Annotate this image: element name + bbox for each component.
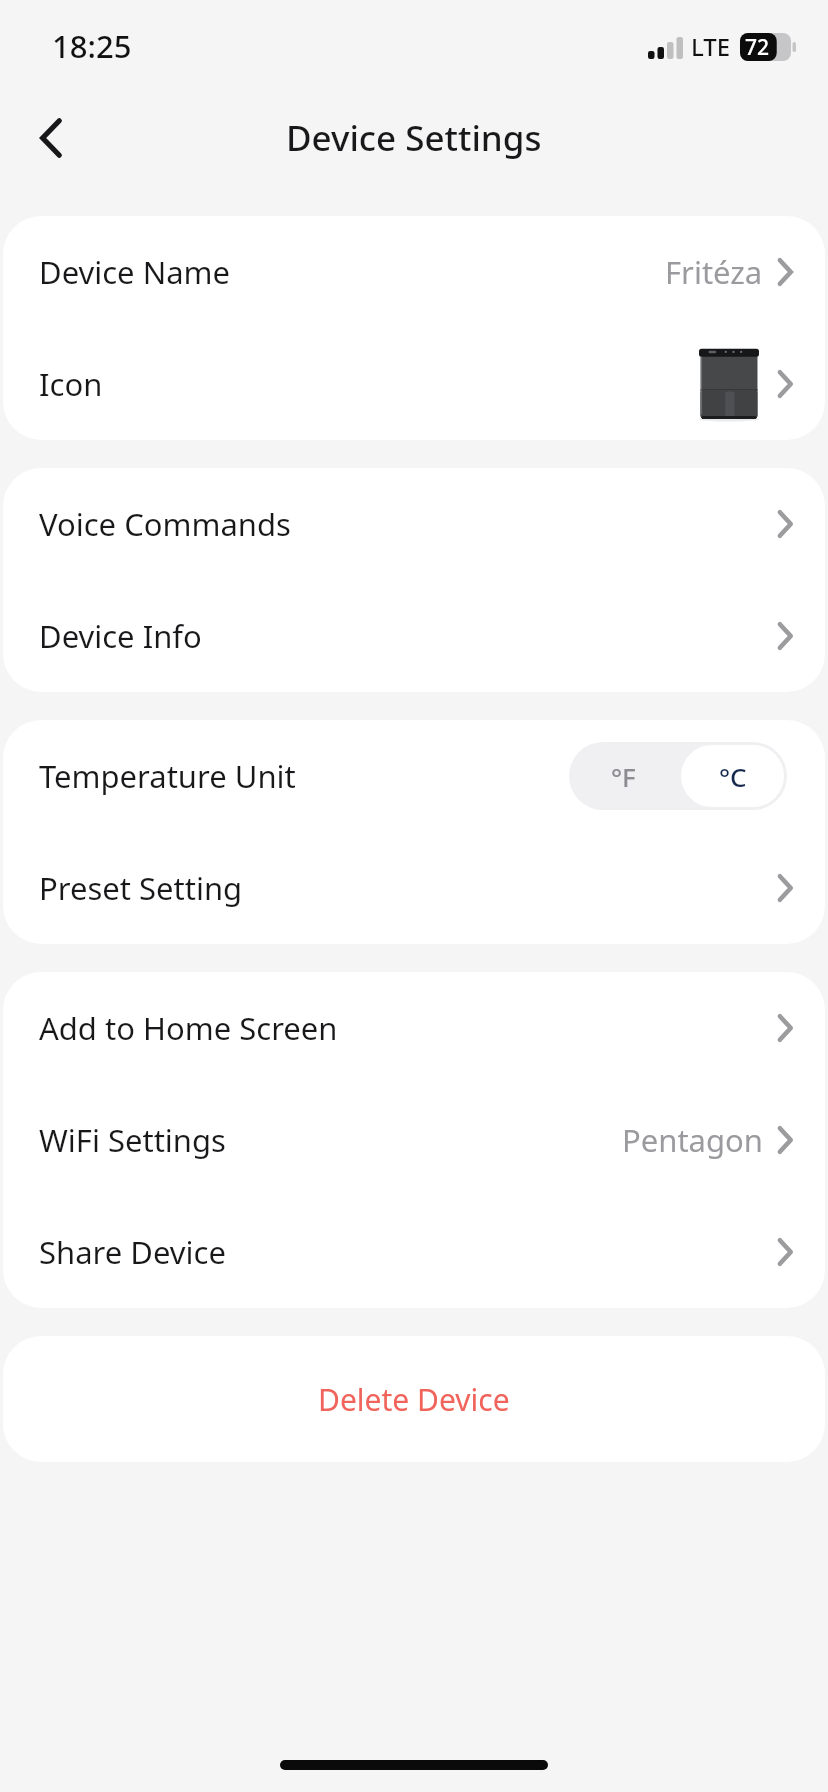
staticText: 72 xyxy=(745,33,770,61)
button[interactable]: Device Name xyxy=(3,216,825,328)
staticText: Add to Home Screen xyxy=(39,1007,338,1049)
staticText: Device Settings xyxy=(286,114,542,162)
staticText: Share Device xyxy=(39,1231,226,1273)
staticText: Voice Commands xyxy=(39,503,291,545)
button[interactable]: Back xyxy=(20,106,84,170)
button[interactable]: Device Info xyxy=(3,580,825,692)
button[interactable]: Delete Device xyxy=(3,1336,825,1462)
staticText: Temperature Unit xyxy=(39,755,296,797)
staticText: WiFi Settings xyxy=(39,1119,226,1161)
button[interactable]: °C xyxy=(681,745,784,807)
staticText: Icon xyxy=(39,363,103,405)
staticText: Device Name xyxy=(39,251,231,293)
staticText: °C xyxy=(719,759,747,794)
button[interactable]: Icon xyxy=(3,328,825,440)
staticText: LTE xyxy=(691,30,731,63)
staticText: 18:25 xyxy=(52,25,132,67)
button[interactable]: Preset Setting xyxy=(3,832,825,944)
button[interactable]: °F xyxy=(569,742,678,810)
staticText: Delete Device xyxy=(318,1379,510,1420)
staticText: °F xyxy=(611,759,636,794)
staticText: Fritéza xyxy=(665,251,763,293)
staticText: Device Info xyxy=(39,615,202,657)
staticText: Pentagon xyxy=(622,1119,763,1161)
button[interactable]: WiFi Settings xyxy=(3,1084,825,1196)
button[interactable]: Add to Home Screen xyxy=(3,972,825,1084)
button[interactable]: Share Device xyxy=(3,1196,825,1308)
staticText: Preset Setting xyxy=(39,867,243,909)
button[interactable]: Voice Commands xyxy=(3,468,825,580)
